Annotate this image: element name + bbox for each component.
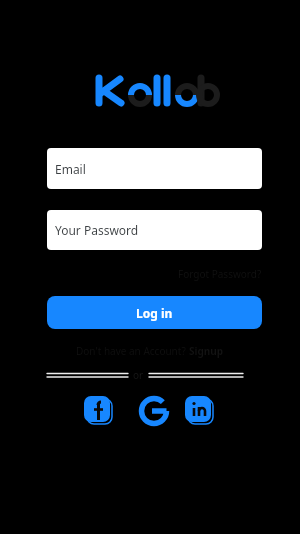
staticText: Signup	[189, 344, 224, 358]
button[interactable]: Forgot Password?	[178, 267, 262, 281]
staticText: Log in	[136, 305, 173, 321]
staticText: or	[133, 368, 144, 382]
button[interactable]: Your Password	[47, 210, 262, 250]
button[interactable]	[185, 396, 215, 426]
button[interactable]: Email	[47, 148, 262, 189]
staticText: Your Password	[55, 222, 139, 238]
button[interactable]	[84, 396, 114, 426]
button[interactable]	[139, 396, 169, 426]
staticText: Email	[55, 161, 86, 177]
staticText: Don't have an Account?	[76, 344, 189, 358]
button[interactable]: Don't have an Account?	[0, 344, 300, 358]
button[interactable]: Log in	[47, 296, 262, 329]
